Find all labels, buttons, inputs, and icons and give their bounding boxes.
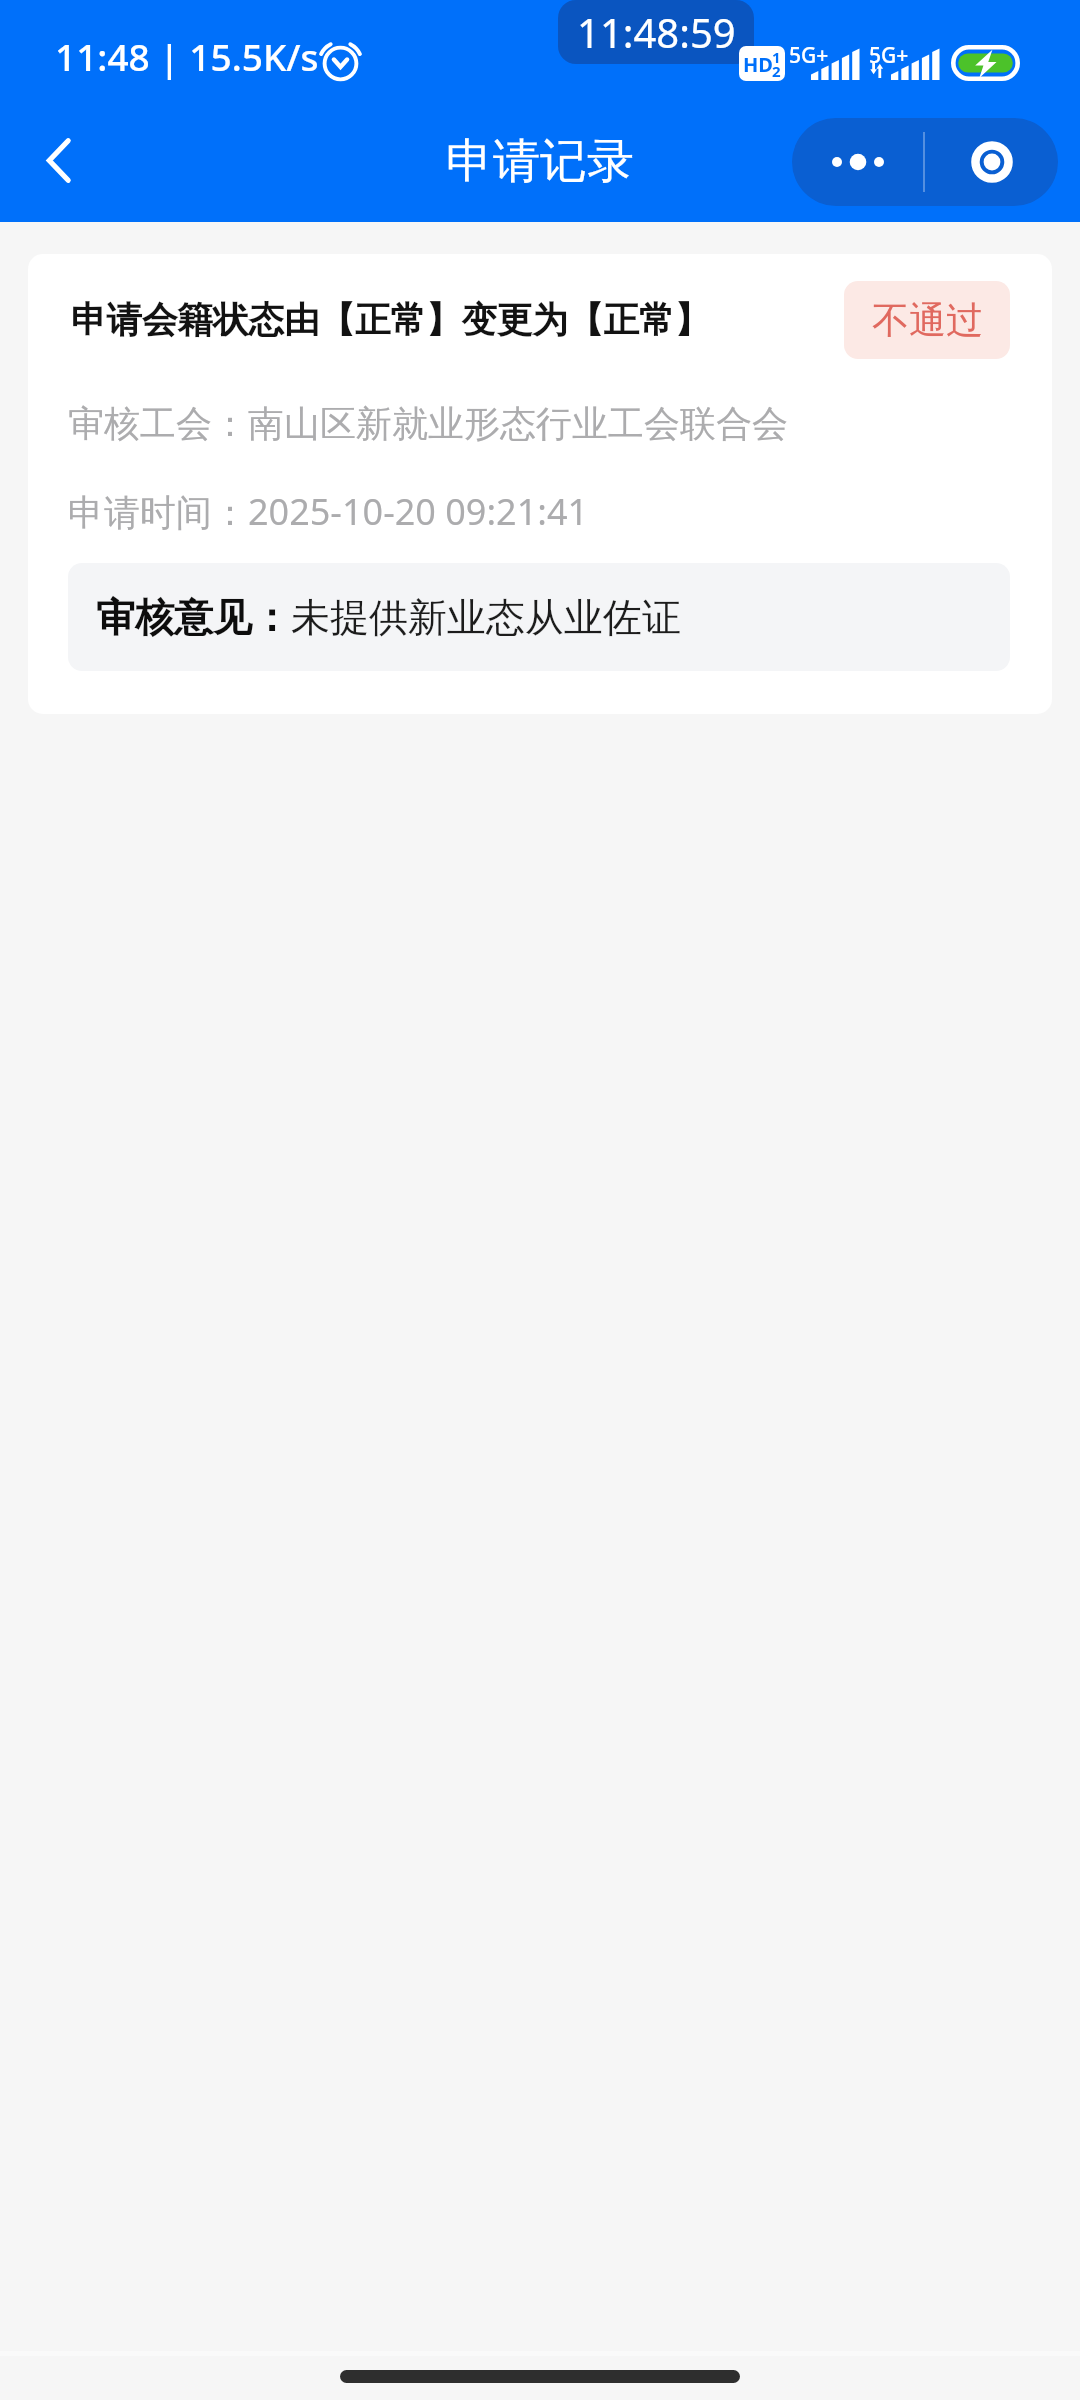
staticText: 申请时间：2025-10-20 09:21:41 — [68, 487, 589, 536]
staticText: 审核工会：南山区新就业形态行业工会联合会 — [68, 401, 788, 446]
button[interactable]: 返回 — [14, 116, 102, 204]
staticText: 审核意见： — [96, 593, 291, 642]
staticText: 5G+ — [789, 41, 829, 70]
staticText: 不通过 — [872, 297, 983, 344]
button[interactable]: Close — [925, 118, 1058, 206]
staticText: 11:48 | 15.5K/s — [55, 31, 319, 81]
staticText: 未提供新业态从业佐证 — [291, 593, 681, 642]
staticText: HD — [743, 51, 773, 78]
staticText: 申请记录 — [446, 132, 634, 191]
button[interactable]: More — [792, 118, 923, 206]
staticText: 2 — [772, 61, 781, 81]
staticText: 1 — [772, 47, 781, 67]
staticText: 申请会籍状态由【正常】变更为【正常】 — [71, 298, 710, 343]
staticText: 11:48:59 — [577, 5, 736, 59]
button[interactable]: 申请会籍状态由【正常】变更为【正常】 — [28, 254, 1052, 714]
staticText: 5G+ — [869, 41, 909, 70]
